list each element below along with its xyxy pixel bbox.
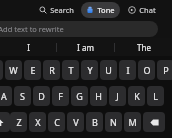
staticText: H — [95, 90, 102, 102]
staticText: I — [27, 42, 30, 53]
staticText: U — [105, 64, 112, 76]
staticText: G — [76, 90, 83, 102]
staticText: Chat — [139, 5, 156, 15]
button[interactable]: E — [24, 60, 41, 80]
staticText: Y — [87, 64, 93, 76]
staticText: V — [73, 116, 79, 128]
staticText: The — [137, 42, 151, 53]
button[interactable]: U — [100, 60, 117, 80]
button[interactable]: F — [52, 86, 69, 106]
button[interactable]: V — [67, 112, 84, 132]
staticText: L — [153, 90, 158, 102]
button[interactable]: I am — [57, 38, 114, 56]
staticText: S — [20, 90, 25, 102]
staticText: I — [126, 64, 130, 76]
staticText: Add text to rewrite — [0, 24, 64, 34]
staticText: W — [9, 64, 18, 76]
button[interactable]: X — [29, 112, 46, 132]
button[interactable]: Add text to rewrite — [0, 21, 158, 37]
staticText: P — [163, 64, 169, 76]
button[interactable]: C — [48, 112, 65, 132]
staticText: Tone — [97, 5, 115, 15]
button[interactable]: Y — [81, 60, 98, 80]
button[interactable]: I — [119, 60, 136, 80]
staticText: A — [1, 90, 7, 102]
button[interactable]: Z — [10, 112, 27, 132]
staticText: B — [92, 116, 98, 128]
button[interactable]: Search — [36, 3, 77, 17]
button[interactable]: L — [147, 86, 164, 106]
staticText: I am — [77, 42, 94, 53]
button[interactable]: Tone — [81, 2, 120, 18]
staticText: X — [35, 116, 41, 128]
staticText: R — [49, 64, 55, 76]
button[interactable]: B — [86, 112, 103, 132]
button[interactable]: I — [0, 38, 56, 56]
staticText: T — [68, 64, 74, 76]
staticText: E — [30, 64, 36, 76]
button[interactable]: W — [5, 60, 22, 80]
button[interactable]: K — [128, 86, 145, 106]
button[interactable]: The — [115, 38, 172, 56]
button[interactable]: Shift — [0, 112, 10, 132]
button[interactable]: G — [71, 86, 88, 106]
button[interactable]: O — [138, 60, 155, 80]
button[interactable]: S — [14, 86, 31, 106]
button[interactable]: N — [105, 112, 122, 132]
button[interactable]: T — [62, 60, 79, 80]
staticText: N — [110, 116, 117, 128]
button[interactable]: A — [0, 86, 12, 106]
staticText: O — [143, 64, 151, 76]
staticText: F — [58, 90, 63, 102]
button[interactable]: Chat — [125, 3, 159, 17]
button[interactable]: P — [157, 60, 172, 80]
staticText: K — [134, 90, 140, 102]
staticText: C — [54, 116, 60, 128]
staticText: Search — [50, 5, 74, 15]
staticText: Z — [16, 116, 22, 128]
button[interactable]: J — [109, 86, 126, 106]
button[interactable]: H — [90, 86, 107, 106]
button[interactable]: R — [43, 60, 60, 80]
button[interactable]: Backspace — [143, 112, 165, 132]
button[interactable]: M — [124, 112, 141, 132]
staticText: M — [128, 116, 137, 128]
button[interactable]: D — [33, 86, 50, 106]
staticText: D — [38, 90, 45, 102]
button[interactable]: Q — [0, 60, 3, 80]
staticText: J — [116, 90, 119, 102]
